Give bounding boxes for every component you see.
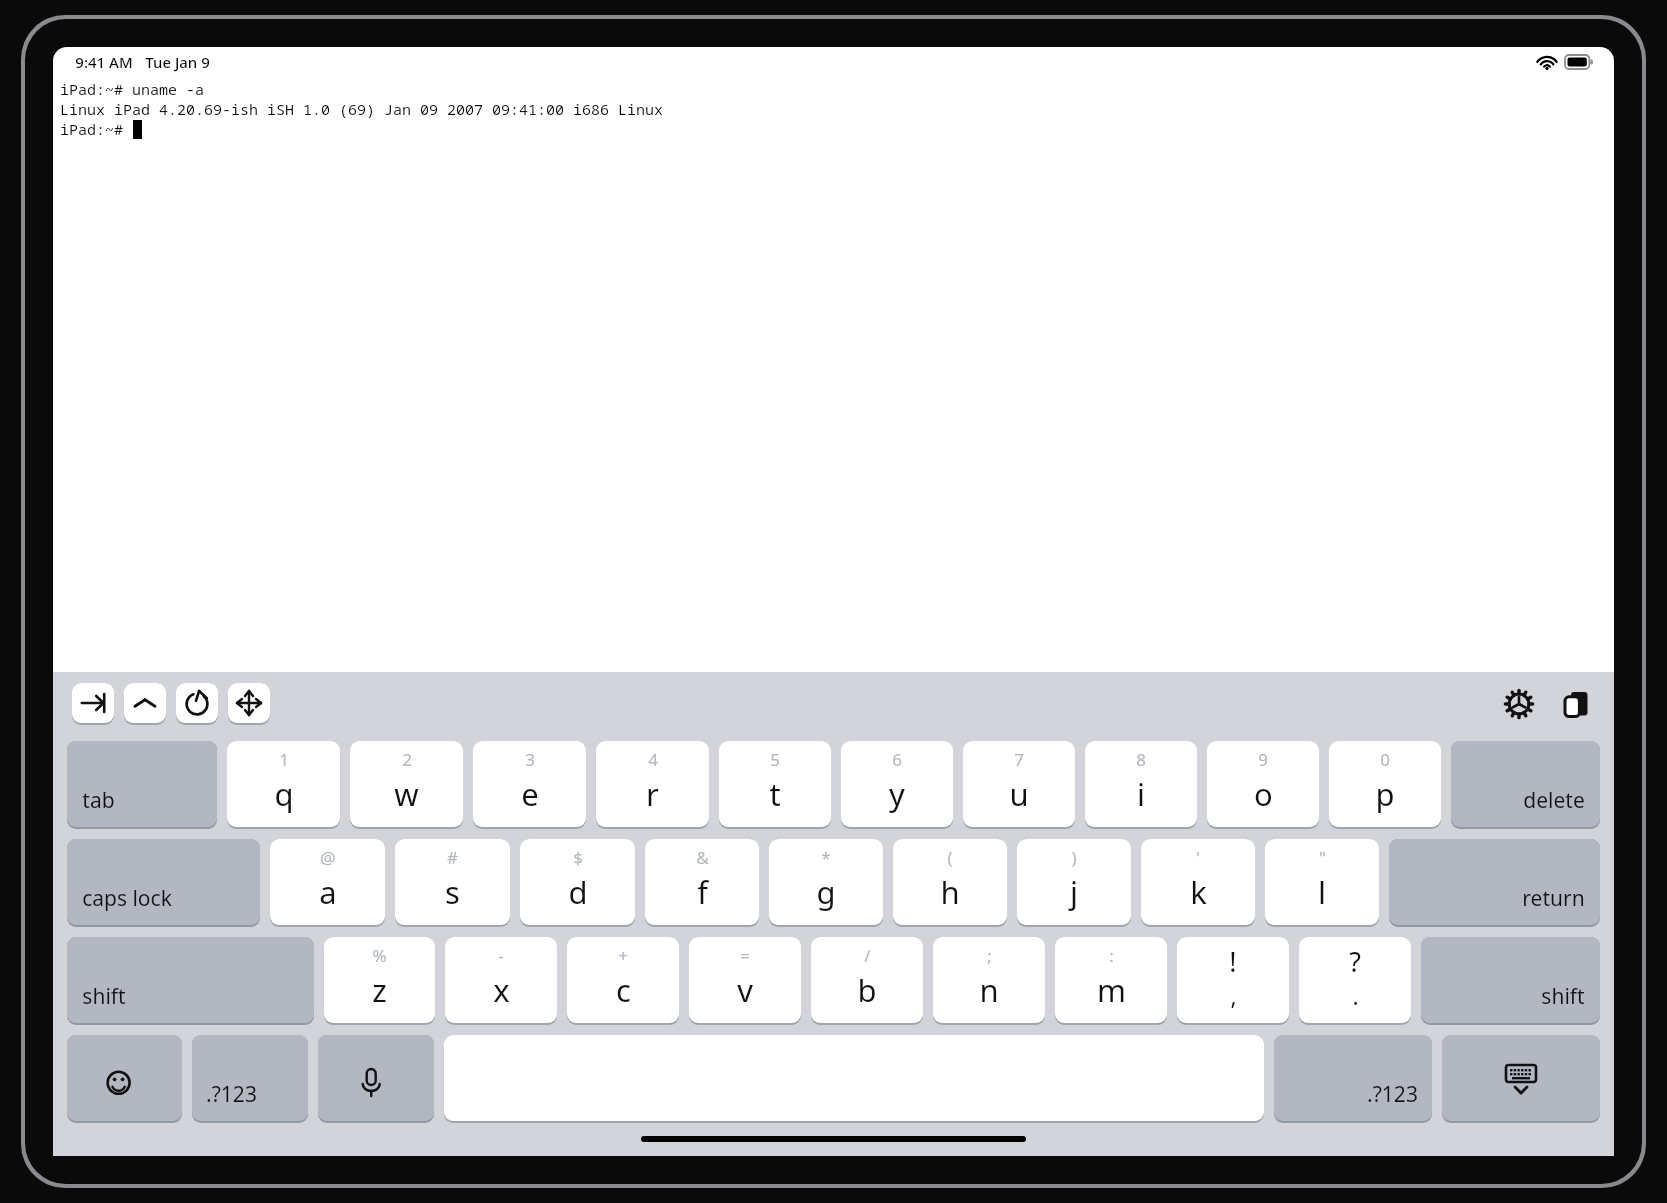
staticText: x	[493, 969, 510, 1011]
button[interactable]: delete	[1451, 741, 1600, 827]
staticText: Tue Jan 9	[145, 52, 210, 72]
button[interactable]: Settings	[1496, 681, 1542, 727]
staticText: f	[697, 871, 708, 913]
staticText: b	[857, 969, 877, 1011]
staticText: c	[616, 969, 631, 1011]
staticText: *	[821, 846, 831, 869]
staticText: z	[372, 969, 387, 1011]
staticText: return	[1522, 884, 1585, 913]
button[interactable]: 9	[1207, 741, 1319, 827]
staticText: iPad:~# uname -a	[60, 79, 205, 99]
button[interactable]: tab	[67, 741, 217, 827]
staticText: &	[696, 846, 709, 869]
button[interactable]: shift	[67, 937, 314, 1023]
staticText: ,	[1230, 980, 1237, 1011]
staticText: 9	[1258, 748, 1268, 771]
staticText: .?123	[1367, 1080, 1418, 1109]
button[interactable]: Emoji	[67, 1035, 182, 1121]
button[interactable]: 1	[227, 741, 340, 827]
button[interactable]: ;	[933, 937, 1045, 1023]
staticText: s	[445, 871, 460, 913]
staticText: iPad:~#	[60, 119, 133, 139]
staticText: 8	[1136, 748, 1146, 771]
button[interactable]: '	[1141, 839, 1255, 925]
button[interactable]: @	[270, 839, 385, 925]
staticText: i	[1137, 773, 1145, 815]
button[interactable]: Control	[124, 683, 166, 723]
button[interactable]: .?123	[1274, 1035, 1432, 1121]
staticText: 3	[525, 748, 535, 771]
staticText: (	[947, 846, 953, 869]
staticText: %	[372, 944, 387, 967]
button[interactable]: +	[567, 937, 679, 1023]
button[interactable]: 3	[473, 741, 586, 827]
button[interactable]: 8	[1085, 741, 1197, 827]
staticText: k	[1190, 871, 1207, 913]
staticText: l	[1318, 871, 1326, 913]
button[interactable]: 4	[596, 741, 709, 827]
staticText: p	[1375, 773, 1395, 815]
button[interactable]: *	[769, 839, 883, 925]
staticText: .	[1352, 980, 1359, 1011]
button[interactable]: caps lock	[67, 839, 260, 925]
button[interactable]: !	[1177, 937, 1289, 1023]
staticText: +	[618, 944, 628, 967]
staticText: r	[646, 773, 659, 815]
button[interactable]: -	[445, 937, 557, 1023]
button[interactable]: ?	[1299, 937, 1411, 1023]
staticText: q	[274, 773, 294, 815]
button[interactable]: 2	[350, 741, 463, 827]
staticText: #	[447, 846, 458, 869]
button[interactable]: Dictation	[318, 1035, 434, 1121]
staticText: g	[816, 871, 836, 913]
button[interactable]: #	[395, 839, 510, 925]
button[interactable]: $	[520, 839, 635, 925]
button[interactable]: return	[1389, 839, 1600, 925]
button[interactable]: Tab	[72, 683, 114, 723]
staticText: "	[1319, 846, 1326, 869]
button[interactable]: =	[689, 937, 801, 1023]
button[interactable]: (	[893, 839, 1007, 925]
button[interactable]: Arrow keys	[228, 683, 270, 723]
button[interactable]: 6	[841, 741, 953, 827]
button[interactable]: Paste	[1554, 681, 1600, 727]
staticText: j	[1070, 871, 1078, 913]
button[interactable]: )	[1017, 839, 1131, 925]
staticText: 2	[402, 748, 412, 771]
staticText: .?123	[206, 1080, 257, 1109]
button[interactable]: &	[645, 839, 759, 925]
staticText: tab	[82, 786, 115, 815]
staticText: t	[769, 773, 781, 815]
staticText: Linux iPad 4.20.69-ish iSH 1.0 (69) Jan …	[60, 99, 664, 119]
staticText: shift	[1541, 982, 1585, 1011]
button[interactable]: 7	[963, 741, 1075, 827]
staticText: :	[1109, 944, 1114, 967]
button[interactable]: Escape	[176, 683, 218, 723]
staticText: w	[394, 773, 419, 815]
staticText: n	[979, 969, 999, 1011]
staticText: o	[1254, 773, 1273, 815]
staticText: a	[319, 871, 337, 913]
staticText: -	[498, 944, 504, 967]
staticText: ?	[1349, 943, 1361, 980]
button[interactable]: Hide keyboard	[1442, 1035, 1600, 1121]
staticText: shift	[82, 982, 126, 1011]
button[interactable]: 0	[1329, 741, 1441, 827]
button[interactable]: shift	[1421, 937, 1600, 1023]
button[interactable]: :	[1055, 937, 1167, 1023]
staticText: @	[320, 846, 336, 869]
staticText: '	[1196, 846, 1200, 869]
staticText: 1	[279, 748, 289, 771]
button[interactable]: "	[1265, 839, 1379, 925]
staticText: y	[889, 773, 905, 815]
button[interactable]: /	[811, 937, 923, 1023]
staticText: =	[740, 944, 750, 967]
staticText: 7	[1014, 748, 1024, 771]
button[interactable]: .?123	[192, 1035, 308, 1121]
staticText: !	[1229, 943, 1237, 980]
staticText: 5	[770, 748, 780, 771]
staticText: 4	[648, 748, 658, 771]
button[interactable]: %	[324, 937, 435, 1023]
button[interactable]: 5	[719, 741, 831, 827]
